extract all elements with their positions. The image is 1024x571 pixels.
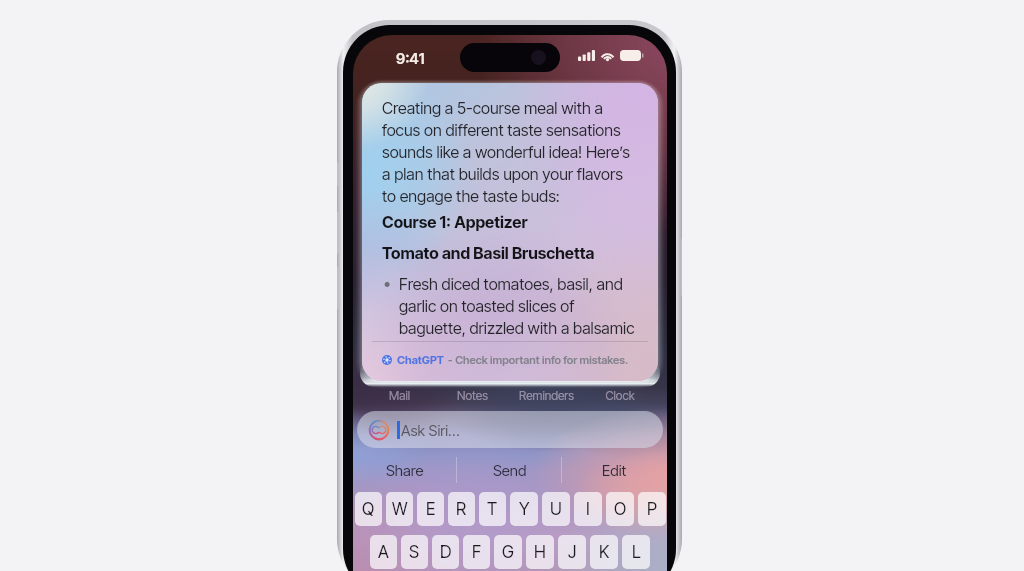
button[interactable]: Share xyxy=(353,452,457,488)
staticText: S xyxy=(409,542,420,563)
staticText: Q xyxy=(362,499,375,520)
button[interactable]: U xyxy=(542,492,570,526)
staticText: - Check important info for mistakes. xyxy=(448,353,629,367)
staticText: O xyxy=(614,499,627,520)
staticText: Edit xyxy=(602,461,627,479)
button[interactable]: Send xyxy=(457,452,562,488)
staticText: H xyxy=(534,542,546,563)
button[interactable]: Q xyxy=(355,492,382,526)
staticText: Send xyxy=(493,461,527,479)
button[interactable]: Notes xyxy=(436,385,509,405)
button[interactable]: Y xyxy=(510,492,538,526)
button[interactable]: L xyxy=(622,535,650,569)
button[interactable]: H xyxy=(526,535,554,569)
staticText: F xyxy=(472,542,482,563)
staticText: Share xyxy=(386,461,424,479)
button[interactable]: W xyxy=(386,492,413,526)
staticText: A xyxy=(378,542,389,563)
staticText: P xyxy=(647,499,657,520)
staticText: U xyxy=(550,499,562,520)
button[interactable]: Ask Siri… xyxy=(357,411,663,448)
staticText: T xyxy=(487,499,498,520)
button[interactable]: J xyxy=(558,535,586,569)
button[interactable]: R xyxy=(448,492,475,526)
button[interactable]: P xyxy=(638,492,666,526)
button[interactable]: F xyxy=(463,535,490,569)
staticText: Creating a 5-course meal with a focus on… xyxy=(382,98,630,206)
button[interactable]: O xyxy=(606,492,634,526)
button[interactable]: A xyxy=(370,535,397,569)
staticText: ChatGPT xyxy=(397,353,444,367)
staticText: R xyxy=(456,499,467,520)
staticText: Course 1: Appetizer xyxy=(382,212,528,232)
button[interactable]: I xyxy=(574,492,602,526)
staticText: J xyxy=(568,542,577,563)
button[interactable]: T xyxy=(479,492,506,526)
button[interactable]: Reminders xyxy=(509,385,583,405)
button[interactable]: D xyxy=(432,535,459,569)
staticText: Ask Siri… xyxy=(401,421,460,439)
staticText: • xyxy=(383,273,391,292)
staticText: E xyxy=(426,499,436,520)
staticText: Mail xyxy=(389,388,410,403)
button[interactable]: Creating a 5-course meal with a focus on… xyxy=(362,83,658,381)
staticText: Y xyxy=(519,499,530,520)
button[interactable]: G xyxy=(494,535,522,569)
staticText: 9:41 xyxy=(396,49,425,67)
staticText: Tomato and Basil Bruschetta xyxy=(382,243,595,263)
button[interactable]: Edit xyxy=(562,452,667,488)
button[interactable]: E xyxy=(417,492,444,526)
button[interactable]: Clock xyxy=(583,385,657,405)
staticText: K xyxy=(599,542,610,563)
staticText: G xyxy=(502,542,514,563)
staticText: I xyxy=(586,499,590,520)
button[interactable]: K xyxy=(590,535,618,569)
staticText: Reminders xyxy=(519,388,574,403)
staticText: Clock xyxy=(605,388,635,403)
staticText: Fresh diced tomatoes, basil, and garlic … xyxy=(399,274,635,338)
button[interactable]: S xyxy=(401,535,428,569)
button[interactable]: Mail xyxy=(363,385,436,405)
staticText: D xyxy=(440,542,452,563)
staticText: L xyxy=(632,542,641,563)
staticText: W xyxy=(392,499,408,520)
staticText: Notes xyxy=(457,388,488,403)
